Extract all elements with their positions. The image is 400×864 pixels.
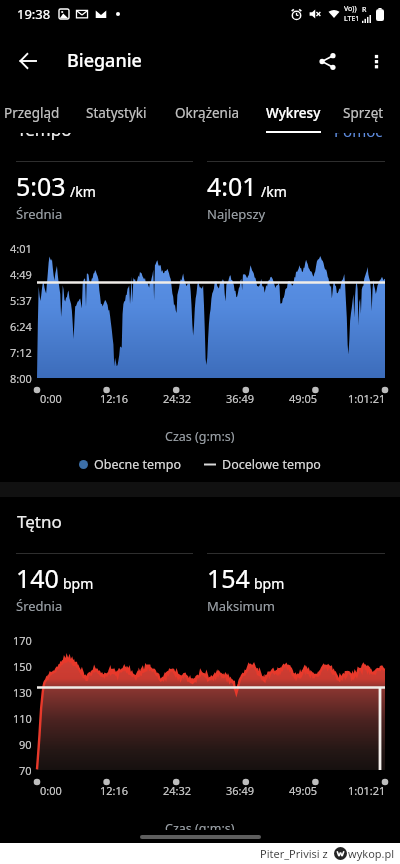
staticText: bpm [254, 574, 285, 593]
staticText: Przegląd [4, 104, 60, 122]
staticText: 7:12 [10, 345, 32, 359]
staticText: 0:00 [40, 783, 62, 798]
button[interactable]: Sprzęt [334, 93, 392, 133]
staticText: 110 [13, 711, 32, 725]
button[interactable]: Statystyki [72, 93, 160, 133]
staticText: Piter_Privisi z [260, 846, 328, 861]
button[interactable]: Pomoc [334, 133, 383, 141]
staticText: 154 [207, 561, 250, 595]
staticText: 5:03 [16, 169, 66, 203]
staticText: 24:32 [163, 391, 192, 406]
staticText: 19:38 [17, 5, 51, 23]
staticText: 5:37 [10, 293, 32, 307]
staticText: 12:16 [100, 783, 129, 798]
staticText: Najlepszy [207, 205, 266, 223]
staticText: bpm [63, 574, 94, 593]
staticText: 6:24 [10, 319, 32, 333]
staticText: Vo)) [344, 4, 357, 14]
staticText: wykop.pl [348, 846, 395, 861]
staticText: Czas (g:m:s) [165, 820, 235, 837]
staticText: Średnia [16, 205, 63, 223]
staticText: 12:16 [100, 391, 129, 406]
button[interactable]: Wykresy [253, 93, 334, 133]
staticText: 0:00 [40, 391, 62, 406]
staticText: 170 [13, 633, 32, 647]
staticText: Sprzęt [343, 104, 384, 122]
staticText: Wykresy [266, 104, 321, 122]
staticText: 49:05 [289, 391, 318, 406]
button[interactable]: More options [352, 37, 400, 85]
staticText: 1:01:21 [348, 391, 386, 406]
button[interactable]: Przegląd [0, 93, 72, 133]
staticText: Obecne tempo [94, 456, 182, 473]
staticText: Statystyki [86, 104, 147, 122]
staticText: /km [70, 182, 96, 201]
staticText: Bieganie [67, 48, 142, 73]
staticText: 4:01 [207, 169, 257, 203]
staticText: Pomoc [334, 133, 383, 141]
staticText: LTE1 [344, 14, 360, 24]
staticText: 4:01 [10, 241, 32, 255]
staticText: 150 [13, 659, 32, 673]
staticText: 90 [19, 737, 32, 751]
staticText: /km [261, 182, 287, 201]
button[interactable]: Back [4, 37, 52, 85]
staticText: 24:32 [163, 783, 192, 798]
staticText: Średnia [16, 597, 63, 615]
staticText: Tempo [17, 133, 72, 141]
staticText: Docelowe tempo [222, 456, 321, 473]
staticText: Maksimum [207, 597, 275, 615]
staticText: 49:05 [289, 783, 318, 798]
staticText: Okrążenia [175, 104, 239, 122]
staticText: Czas (g:m:s) [165, 428, 235, 445]
staticText: Tętno [17, 510, 62, 533]
staticText: R [362, 5, 367, 15]
staticText: 130 [13, 685, 32, 699]
staticText: 4:49 [10, 267, 32, 281]
staticText: 140 [16, 561, 59, 595]
staticText: 36:49 [226, 391, 255, 406]
staticText: 1:01:21 [348, 783, 386, 798]
staticText: 8:00 [10, 371, 32, 385]
staticText: 70 [19, 763, 32, 777]
staticText: 36:49 [226, 783, 255, 798]
button[interactable]: Share [303, 37, 351, 85]
button[interactable]: Okrążenia [160, 93, 253, 133]
